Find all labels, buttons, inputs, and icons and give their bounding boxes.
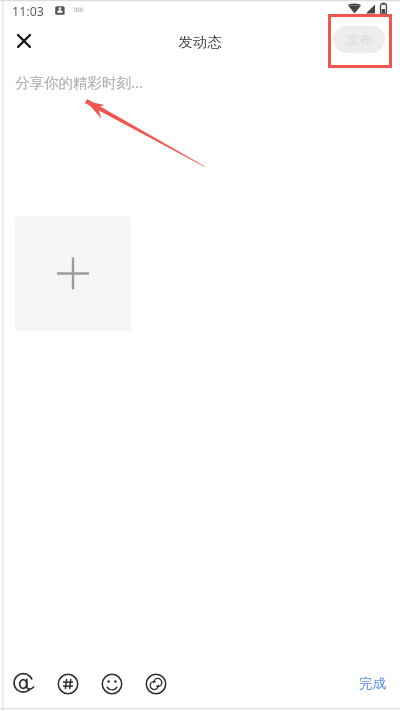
staticText: 11:03	[12, 3, 44, 20]
button[interactable]: Mention someone	[13, 673, 35, 695]
staticText: 发动态	[0, 33, 400, 51]
button[interactable]: 完成	[359, 675, 386, 692]
button[interactable]: Add link	[145, 673, 167, 695]
staticText: 完成	[359, 675, 386, 692]
button[interactable]: Add topic	[57, 673, 79, 695]
staticText: 分享你的精彩时刻...	[15, 72, 143, 92]
button[interactable]: Add photo	[15, 216, 131, 331]
button[interactable]: Close	[12, 29, 36, 53]
button[interactable]: Emoji	[101, 673, 123, 695]
button[interactable]: 发布	[333, 26, 385, 53]
staticText: 发布	[347, 32, 372, 48]
button[interactable]: Share your wonderful moment	[0, 66, 400, 206]
